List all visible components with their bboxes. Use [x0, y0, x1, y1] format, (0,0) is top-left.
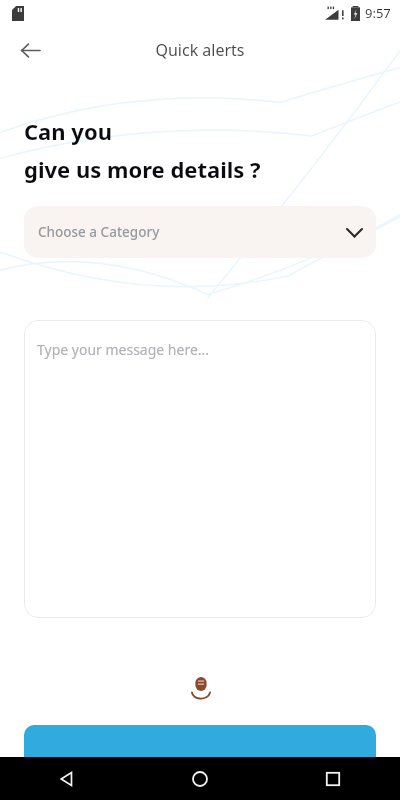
- staticText: Quick alerts: [155, 39, 245, 61]
- button[interactable]: Record voice message: [173, 661, 228, 716]
- staticText: Choose a Category: [38, 223, 160, 241]
- staticText: give us more details ?: [24, 154, 261, 184]
- staticText: Can you: [24, 116, 112, 146]
- staticText: Type your message here...: [37, 340, 210, 359]
- button[interactable]: Back: [43, 757, 91, 800]
- button[interactable]: [24, 725, 376, 773]
- button[interactable]: Back: [8, 28, 52, 72]
- button[interactable]: Type your message here...: [24, 320, 376, 618]
- button[interactable]: Home: [176, 757, 224, 800]
- staticText: 9:57: [365, 4, 391, 22]
- button[interactable]: Choose a Category: [24, 206, 376, 258]
- button[interactable]: Recent apps: [309, 757, 357, 800]
